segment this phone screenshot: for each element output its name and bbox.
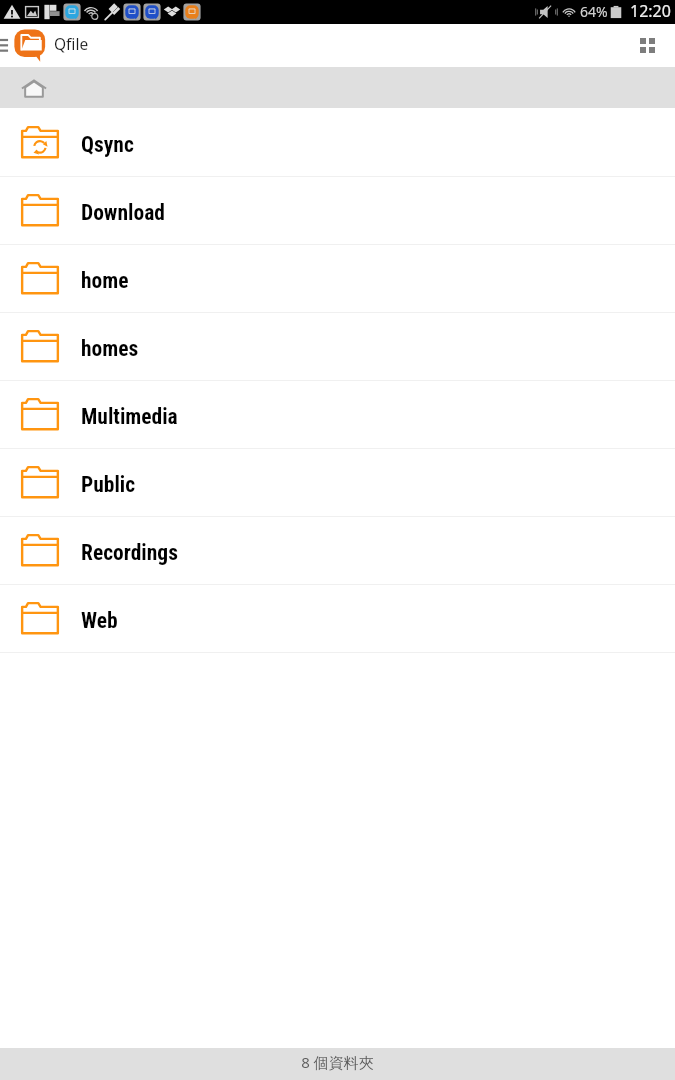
- button[interactable]: Web: [0, 585, 675, 652]
- button[interactable]: Public: [0, 449, 675, 516]
- button[interactable]: home: [0, 245, 675, 312]
- button[interactable]: Download: [0, 177, 675, 244]
- staticText: 12:20: [630, 0, 671, 22]
- staticText: 64%: [580, 2, 608, 21]
- button[interactable]: Qsync: [0, 108, 675, 176]
- button[interactable]: homes: [0, 313, 675, 380]
- button[interactable]: Open navigation menu: [0, 24, 13, 67]
- staticText: Public: [81, 472, 136, 497]
- staticText: 8 個資料夾: [301, 1052, 374, 1072]
- button[interactable]: Home folder: [10, 67, 58, 108]
- staticText: home: [81, 268, 129, 293]
- staticText: Qfile: [54, 33, 89, 54]
- staticText: Qsync: [81, 132, 134, 157]
- staticText: Recordings: [81, 540, 178, 565]
- staticText: Download: [81, 200, 165, 225]
- staticText: Multimedia: [81, 404, 178, 429]
- button[interactable]: Switch to grid view: [627, 24, 675, 67]
- button[interactable]: Recordings: [0, 517, 675, 584]
- button[interactable]: Multimedia: [0, 381, 675, 448]
- staticText: Web: [81, 608, 118, 633]
- staticText: homes: [81, 336, 139, 361]
